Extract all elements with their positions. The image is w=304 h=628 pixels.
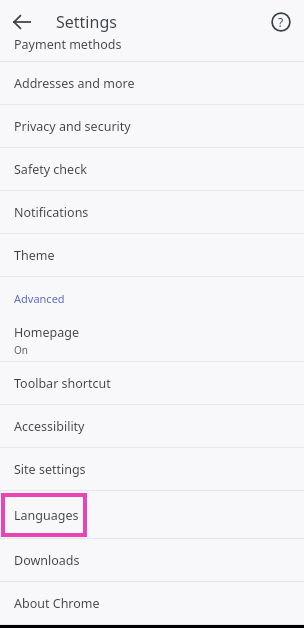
button[interactable]: Theme [0,234,304,276]
staticText: Languages [14,507,79,524]
staticText: Downloads [14,552,80,569]
staticText: Addresses and more [14,75,135,92]
staticText: Notifications [14,204,89,221]
button[interactable]: Payment methods [0,44,304,61]
staticText: Homepage [14,324,80,341]
button[interactable]: Downloads [0,539,304,581]
button[interactable]: Homepage [0,319,304,361]
staticText: Toolbar shortcut [14,375,111,392]
button[interactable]: Help [268,9,294,35]
staticText: Settings [56,11,117,33]
staticText: On [14,343,28,357]
button[interactable]: Accessibility [0,405,304,447]
staticText: Accessibility [14,418,85,435]
staticText: Payment methods [14,36,122,53]
staticText: Site settings [14,461,86,478]
button[interactable]: Site settings [0,448,304,490]
staticText: Advanced [14,291,65,306]
staticText: Theme [14,247,55,264]
button[interactable]: Safety check [0,148,304,190]
button[interactable]: Notifications [0,191,304,233]
staticText: Privacy and security [14,118,131,135]
button[interactable]: Back [10,10,34,34]
button[interactable]: Languages [0,494,304,536]
staticText: Safety check [14,161,87,178]
staticText: ? [278,14,284,30]
button[interactable]: Addresses and more [0,62,304,104]
button[interactable]: About Chrome [0,582,304,624]
staticText: About Chrome [14,595,100,612]
button[interactable]: Toolbar shortcut [0,362,304,404]
button[interactable]: Privacy and security [0,105,304,147]
